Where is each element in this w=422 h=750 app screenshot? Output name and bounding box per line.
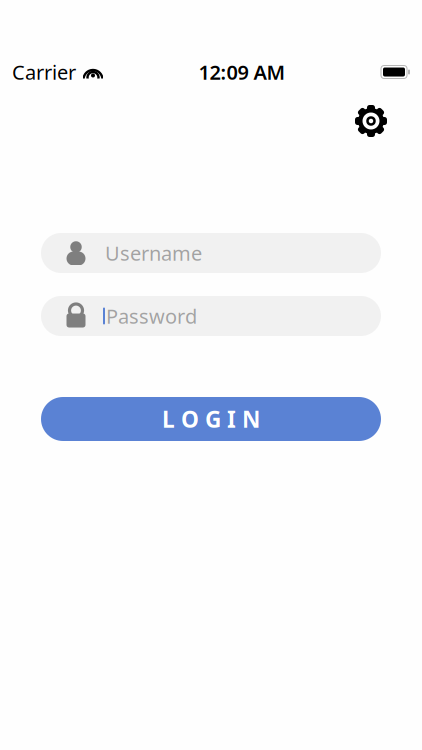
staticText: Password [106,303,197,329]
staticText: Username [105,240,202,266]
staticText: L O G I N [162,404,260,434]
button[interactable]: Settings [349,99,393,143]
staticText: Carrier [12,59,76,85]
button[interactable]: Password [41,296,381,336]
button[interactable]: L O G I N [41,397,381,441]
button[interactable]: Username [41,233,381,273]
staticText: 12:09 AM [198,59,285,85]
